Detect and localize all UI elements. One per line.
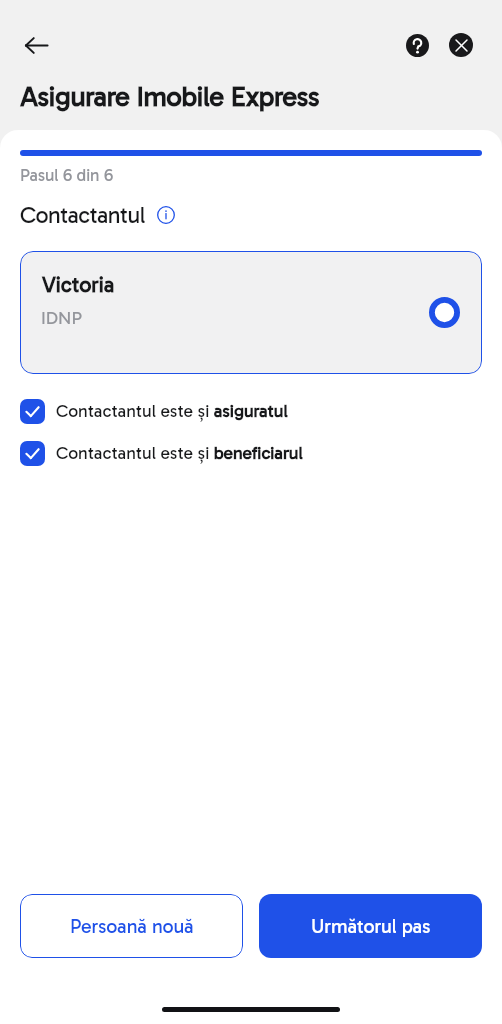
- button[interactable]: Help: [406, 34, 429, 57]
- button[interactable]: Information: [156, 205, 176, 225]
- button[interactable]: Back: [20, 29, 52, 61]
- staticText: Persoană nouă: [70, 915, 194, 938]
- staticText: Victoria: [42, 272, 115, 298]
- staticText: Contactantul: [20, 201, 145, 229]
- staticText: Contactantul este și beneficiarul: [56, 443, 303, 464]
- staticText: Contactantul este și asiguratul: [56, 401, 288, 422]
- button[interactable]: Persoană nouă: [20, 894, 243, 958]
- staticText: Pasul 6 din 6: [20, 165, 113, 185]
- staticText: IDNP: [41, 307, 82, 329]
- button[interactable]: Close: [449, 33, 473, 57]
- staticText: Următorul pas: [311, 915, 431, 938]
- staticText: Asigurare Imobile Express: [20, 80, 320, 113]
- button[interactable]: Contactantul este și beneficiarul: [20, 440, 303, 466]
- button[interactable]: Următorul pas: [259, 894, 482, 958]
- button[interactable]: Victoria: [20, 251, 482, 374]
- button[interactable]: Contactantul este și asiguratul: [20, 398, 288, 424]
